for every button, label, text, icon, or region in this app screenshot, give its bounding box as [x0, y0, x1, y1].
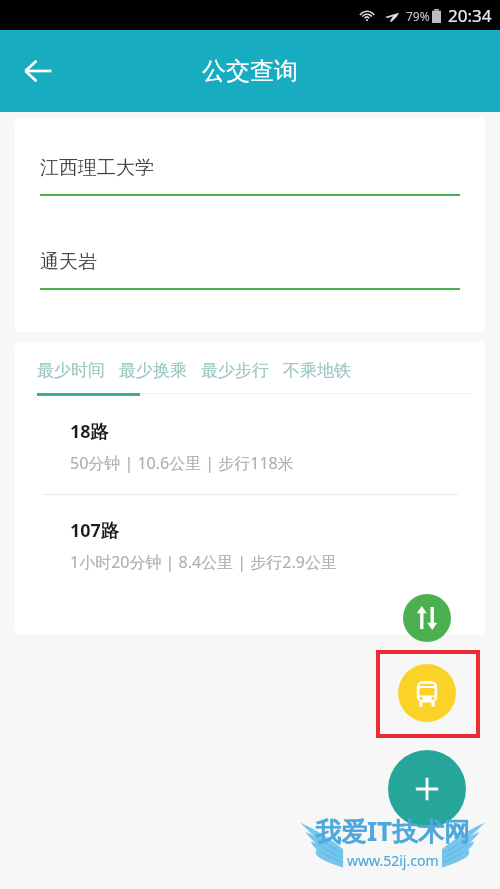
- staticText: 公交查询: [202, 56, 298, 86]
- staticText: 1小时20分钟 | 8.4公里 | 步行2.9公里: [70, 551, 337, 573]
- button[interactable]: 通天岩: [15, 250, 485, 290]
- button[interactable]: 江西理工大学: [15, 156, 485, 196]
- staticText: 通天岩: [40, 250, 97, 274]
- button[interactable]: Back: [12, 45, 64, 97]
- button[interactable]: 最少换乘: [119, 360, 201, 381]
- staticText: 不乘地铁: [283, 360, 351, 381]
- button[interactable]: Swap start and end: [403, 594, 451, 642]
- button[interactable]: Bus mode: [398, 664, 456, 722]
- button[interactable]: 最少步行: [201, 360, 283, 381]
- staticText: 最少时间: [37, 360, 105, 381]
- button[interactable]: 最少时间: [37, 360, 119, 381]
- staticText: 20:34: [448, 4, 492, 27]
- button[interactable]: 不乘地铁: [283, 360, 365, 381]
- staticText: 107路: [70, 518, 119, 543]
- staticText: 江西理工大学: [40, 156, 154, 180]
- staticText: 50分钟 | 10.6公里 | 步行118米: [70, 452, 294, 474]
- button[interactable]: 107路: [15, 495, 485, 593]
- staticText: 最少换乘: [119, 360, 187, 381]
- button[interactable]: Add: [388, 750, 466, 828]
- staticText: 最少步行: [201, 360, 269, 381]
- staticText: 79%: [406, 8, 430, 24]
- staticText: www.52ij.com: [347, 851, 439, 870]
- button[interactable]: 18路: [15, 396, 485, 494]
- staticText: 18路: [70, 419, 109, 444]
- staticText: 我爱IT技术网: [315, 813, 471, 849]
